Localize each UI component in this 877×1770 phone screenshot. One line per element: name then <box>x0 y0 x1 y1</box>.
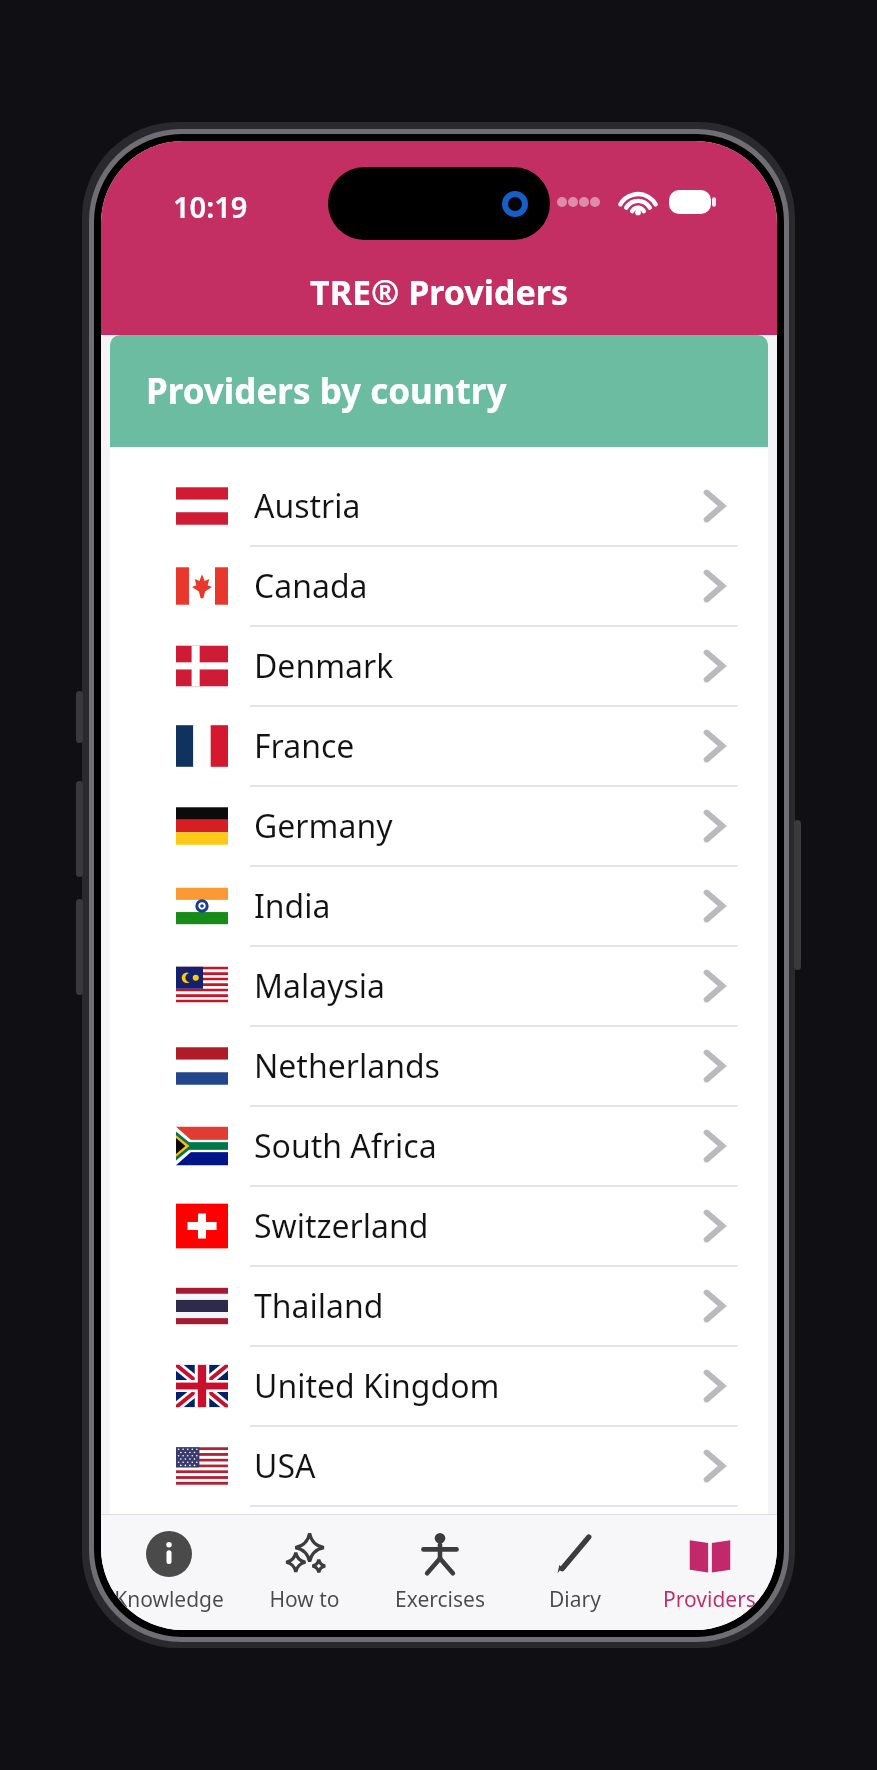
staticText: Providers <box>663 1585 756 1614</box>
button[interactable]: Austria <box>110 467 768 545</box>
staticText: Providers by country <box>146 367 507 415</box>
staticText: 10:19 <box>173 187 248 226</box>
staticText: France <box>254 724 355 768</box>
button[interactable]: How to <box>237 1514 372 1630</box>
staticText: Malaysia <box>254 964 386 1008</box>
staticText: Diary <box>549 1585 601 1614</box>
staticText: Denmark <box>254 644 394 688</box>
staticText: Netherlands <box>254 1044 440 1088</box>
button[interactable]: Switzerland <box>110 1187 768 1265</box>
button[interactable]: France <box>110 707 768 785</box>
button[interactable]: Canada <box>110 547 768 625</box>
staticText: Thailand <box>254 1284 384 1328</box>
other: Exercises <box>417 1531 463 1577</box>
staticText: Exercises <box>395 1585 485 1614</box>
other: Diary <box>552 1531 598 1577</box>
staticText: South Africa <box>254 1124 437 1168</box>
button[interactable]: United Kingdom <box>110 1347 768 1425</box>
button[interactable]: Denmark <box>110 627 768 705</box>
button[interactable]: Diary <box>507 1514 642 1630</box>
staticText: Switzerland <box>254 1204 429 1248</box>
staticText: USA <box>254 1444 316 1488</box>
staticText: United Kingdom <box>254 1364 500 1408</box>
button[interactable]: Knowledge <box>101 1514 237 1630</box>
staticText: TRE® Providers <box>310 269 568 315</box>
staticText: Germany <box>254 804 393 848</box>
button[interactable]: Exercises <box>372 1514 507 1630</box>
button[interactable]: USA <box>110 1427 768 1505</box>
other: How to <box>282 1531 328 1577</box>
button[interactable]: Providers by country <box>110 335 768 447</box>
other: Providers <box>687 1531 733 1577</box>
staticText: Canada <box>254 564 368 608</box>
staticText: Austria <box>254 484 361 528</box>
button[interactable]: Providers <box>642 1514 777 1630</box>
staticText: How to <box>269 1585 340 1614</box>
staticText: India <box>254 884 331 928</box>
other: Knowledge <box>146 1531 192 1577</box>
button[interactable]: Germany <box>110 787 768 865</box>
button[interactable]: India <box>110 867 768 945</box>
button[interactable]: Netherlands <box>110 1027 768 1105</box>
button[interactable]: Thailand <box>110 1267 768 1345</box>
staticText: Knowledge <box>114 1585 224 1614</box>
button[interactable]: Malaysia <box>110 947 768 1025</box>
button[interactable]: South Africa <box>110 1107 768 1185</box>
